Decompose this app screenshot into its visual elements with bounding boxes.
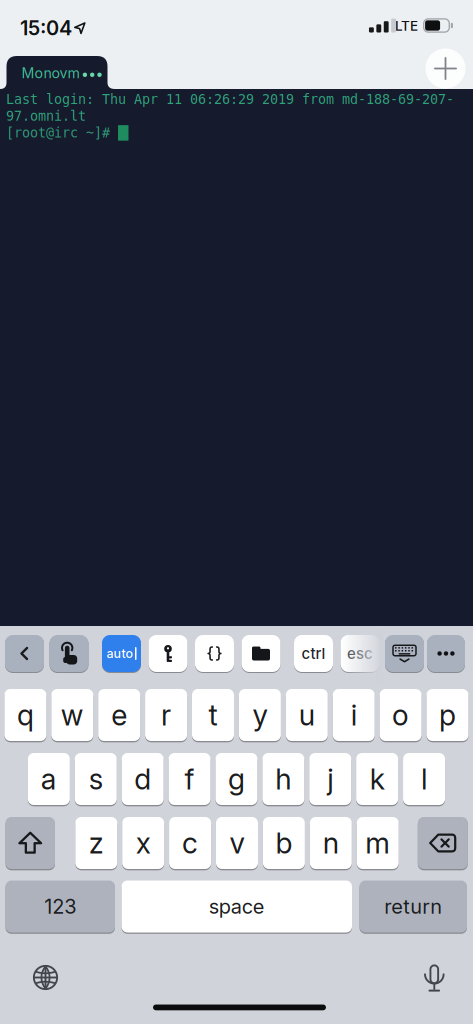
staticText: LTE	[395, 18, 418, 34]
button[interactable]	[385, 635, 424, 672]
staticText: d	[134, 762, 151, 796]
button[interactable]: n	[310, 817, 352, 869]
button[interactable]: space	[121, 880, 352, 932]
button[interactable]: h	[262, 753, 304, 805]
staticText: z	[89, 826, 104, 860]
button[interactable]: f	[168, 753, 210, 805]
button[interactable]: m	[357, 817, 399, 869]
staticText: auto	[106, 646, 133, 661]
button[interactable]: 123	[5, 880, 115, 932]
button[interactable]: esc	[340, 635, 379, 672]
button[interactable]: z	[75, 817, 117, 869]
button[interactable]	[425, 48, 465, 88]
button[interactable]	[241, 635, 280, 672]
staticText: esc	[347, 644, 373, 662]
staticText: t	[208, 698, 217, 732]
staticText: i	[351, 698, 357, 732]
button[interactable]: l	[403, 753, 445, 805]
button[interactable]: w	[51, 689, 93, 741]
button[interactable]: y	[239, 689, 281, 741]
staticText: [root@irc ~]#	[6, 125, 118, 141]
staticText: return	[384, 894, 442, 919]
staticText: Monovm	[21, 64, 79, 82]
button[interactable]: u	[286, 689, 328, 741]
staticText: y	[252, 698, 267, 732]
staticText: c	[182, 826, 198, 860]
staticText: Last login: Thu Apr 11 06:26:29 2019 fro…	[6, 91, 454, 107]
button[interactable]: i	[333, 689, 375, 741]
staticText: v	[229, 826, 244, 860]
button[interactable]	[49, 635, 88, 672]
button[interactable]: Monovm	[0, 56, 120, 89]
button[interactable]	[427, 635, 465, 672]
staticText: 15:04	[20, 16, 72, 40]
button[interactable]	[23, 955, 67, 999]
staticText: a	[41, 762, 57, 796]
staticText: h	[275, 762, 291, 796]
staticText: n	[323, 826, 339, 860]
staticText: s	[89, 762, 103, 796]
button[interactable]	[418, 817, 468, 869]
button[interactable]: g	[215, 753, 257, 805]
button[interactable]	[195, 635, 234, 672]
staticText: q	[17, 698, 34, 732]
button[interactable]: v	[216, 817, 258, 869]
button[interactable]: q	[4, 689, 46, 741]
staticText: m	[365, 826, 390, 860]
button[interactable]: j	[309, 753, 351, 805]
staticText: u	[299, 698, 315, 732]
staticText: 97.omni.lt	[6, 108, 86, 124]
button[interactable]	[148, 635, 187, 672]
staticText: space	[209, 894, 265, 919]
staticText: e	[111, 698, 127, 732]
button[interactable]: c	[169, 817, 211, 869]
staticText: k	[370, 762, 385, 796]
staticText: g	[228, 762, 245, 796]
button[interactable]: p	[426, 689, 468, 741]
button[interactable]: x	[122, 817, 164, 869]
staticText: o	[392, 698, 409, 732]
button[interactable]: s	[75, 753, 117, 805]
button[interactable]: auto	[102, 635, 141, 672]
staticText: l	[421, 762, 427, 796]
staticText: ctrl	[301, 644, 325, 662]
button[interactable]: t	[192, 689, 234, 741]
staticText: b	[275, 826, 292, 860]
button[interactable]	[412, 956, 456, 1000]
button[interactable]	[5, 817, 55, 869]
staticText: w	[61, 698, 84, 732]
button[interactable]: k	[356, 753, 398, 805]
staticText: r	[161, 698, 171, 732]
button[interactable]	[5, 635, 44, 672]
button[interactable]: r	[145, 689, 187, 741]
staticText: x	[136, 826, 151, 860]
button[interactable]: d	[122, 753, 164, 805]
button[interactable]: e	[98, 689, 140, 741]
button[interactable]: ctrl	[294, 635, 333, 672]
button[interactable]: a	[28, 753, 70, 805]
staticText: p	[439, 698, 456, 732]
button[interactable]: return	[359, 880, 467, 932]
button[interactable]: o	[380, 689, 422, 741]
staticText: j	[327, 762, 333, 796]
staticText: f	[184, 762, 194, 796]
button[interactable]: b	[263, 817, 305, 869]
staticText: 123	[44, 894, 76, 919]
